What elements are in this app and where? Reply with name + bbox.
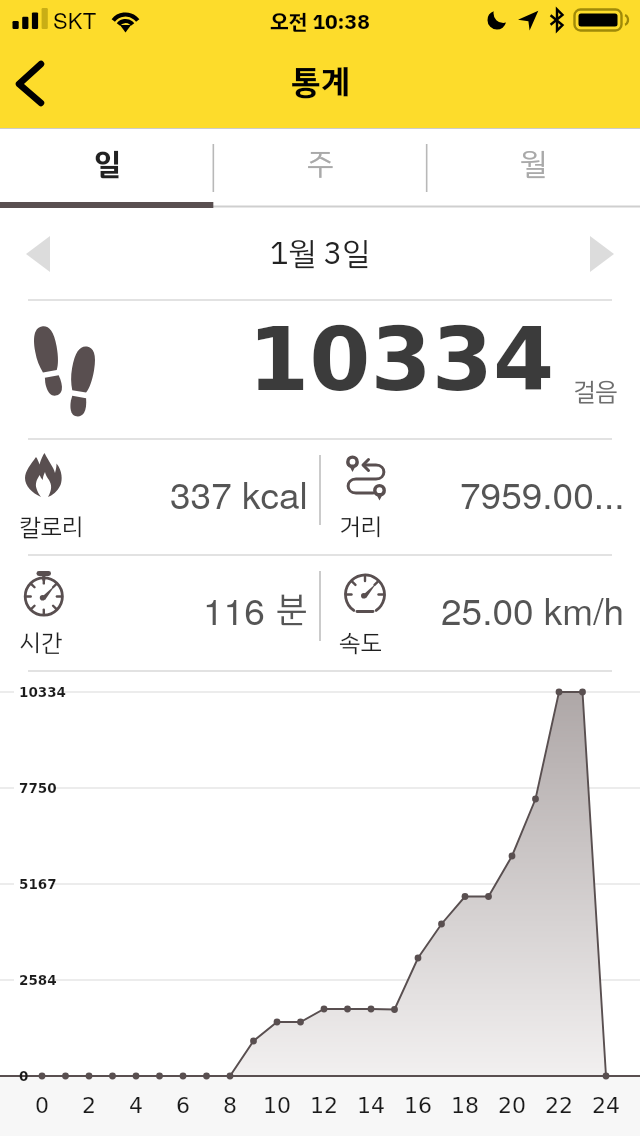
staticText: 분 — [276, 583, 308, 627]
staticText: 10334 — [248, 308, 555, 410]
button[interactable]: 거리 — [338, 439, 450, 544]
staticText: 걸음 — [573, 373, 618, 411]
staticText: 20 — [498, 1093, 526, 1119]
staticText: 22 — [545, 1093, 573, 1119]
button[interactable]: Back — [0, 40, 74, 128]
staticText: 일 — [94, 141, 121, 186]
staticText: 2584 — [19, 972, 57, 988]
staticText: 337 kcal — [170, 467, 308, 511]
button[interactable]: 주 — [214, 128, 427, 208]
staticText: 8 — [223, 1093, 237, 1119]
staticText: 칼로리 — [19, 509, 84, 545]
staticText: 16 — [404, 1093, 432, 1119]
button[interactable]: Next day — [564, 208, 640, 300]
staticText: 주 — [307, 141, 334, 186]
staticText: 10 — [263, 1093, 291, 1119]
staticText: 0 — [35, 1093, 49, 1119]
staticText: 5167 — [19, 876, 57, 892]
staticText: 1월 3일 — [270, 230, 370, 277]
staticText: 7750 — [19, 780, 57, 796]
button[interactable]: 속도 — [338, 555, 450, 660]
staticText: 25.00 km/h — [441, 583, 625, 627]
staticText: 거리 — [339, 509, 382, 545]
staticText: 10334 — [19, 684, 66, 700]
staticText: 18 — [451, 1093, 479, 1119]
staticText: 116 — [203, 583, 276, 627]
button[interactable]: 월 — [427, 128, 640, 208]
staticText: 0 — [19, 1068, 29, 1084]
staticText: 속도 — [339, 625, 382, 661]
button[interactable]: 시간 — [18, 555, 130, 660]
staticText: 2 — [82, 1093, 96, 1119]
staticText: 4 — [129, 1093, 143, 1119]
staticText: 월 — [520, 141, 547, 186]
button[interactable]: 10334 — [0, 300, 640, 439]
button[interactable]: 일 — [0, 128, 214, 208]
staticText: 시간 — [19, 625, 62, 661]
staticText: 7959.00... — [460, 467, 625, 511]
button[interactable]: Previous day — [0, 208, 76, 300]
button[interactable]: 칼로리 — [18, 439, 130, 544]
staticText: 24 — [592, 1093, 620, 1119]
staticText: 14 — [357, 1093, 385, 1119]
staticText: 12 — [310, 1093, 338, 1119]
staticText: 6 — [176, 1093, 190, 1119]
staticText: 오전 10:38 — [270, 6, 370, 38]
staticText: 통계 — [291, 57, 350, 107]
staticText: SKT — [53, 4, 97, 36]
